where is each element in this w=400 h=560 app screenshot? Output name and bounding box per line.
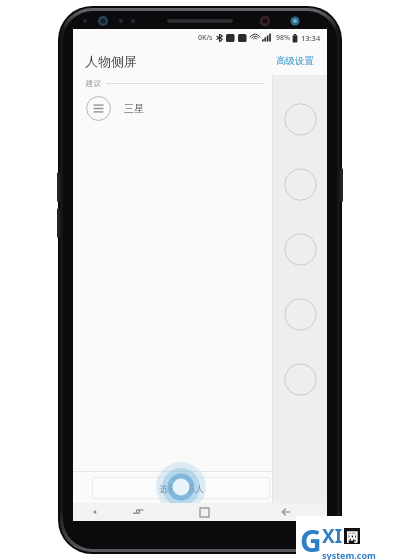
button[interactable]: 三星 <box>73 89 272 127</box>
button[interactable]: 高级设置 <box>273 52 317 70</box>
staticText: 选择联系人 <box>159 483 204 494</box>
button[interactable]: Menu indicator <box>87 503 103 521</box>
staticText: G <box>300 520 322 560</box>
staticText: XI <box>322 523 343 549</box>
staticText: 人物侧屏 <box>85 53 137 69</box>
button[interactable]: Empty contact slot <box>284 103 317 136</box>
button[interactable]: Empty contact slot <box>284 298 317 331</box>
button[interactable]: 选择联系人 <box>92 477 270 499</box>
staticText: 高级设置 <box>276 55 314 67</box>
staticText: 网 <box>346 529 358 544</box>
staticText: 0K/s <box>198 33 213 43</box>
button[interactable]: Recents <box>125 503 151 521</box>
button[interactable]: Home <box>191 503 217 521</box>
staticText: 98% <box>276 33 290 43</box>
button[interactable]: Empty contact slot <box>284 168 317 201</box>
staticText: system.com <box>322 549 376 560</box>
staticText: 三星 <box>124 102 144 115</box>
staticText: 建议 <box>86 79 101 88</box>
staticText: 13:34 <box>301 33 321 43</box>
button[interactable]: Empty contact slot <box>284 233 317 266</box>
button[interactable]: Back <box>273 503 299 521</box>
button[interactable]: Empty contact slot <box>284 363 317 396</box>
